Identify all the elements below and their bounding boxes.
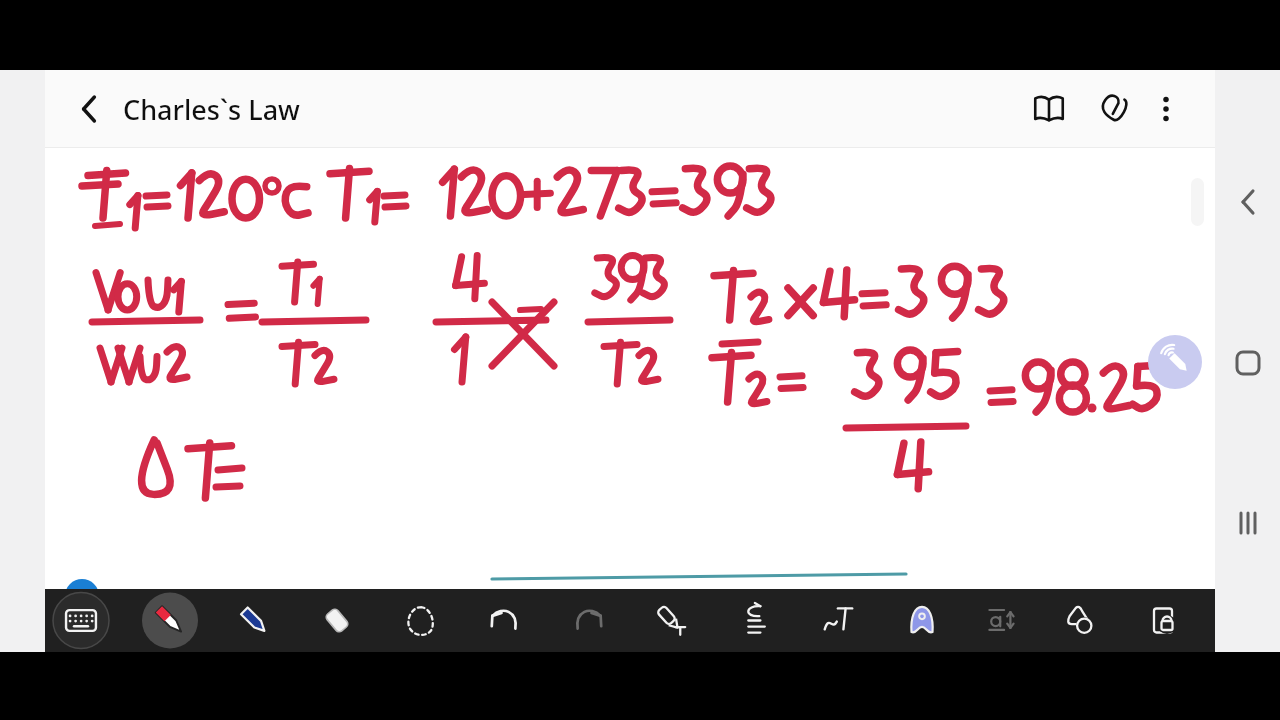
- button[interactable]: Back: [61, 81, 117, 137]
- button[interactable]: Text spacing: [974, 589, 1030, 652]
- button[interactable]: Pen: [142, 589, 198, 652]
- button[interactable]: Undo: [477, 589, 533, 652]
- button[interactable]: More options: [1138, 81, 1194, 137]
- button[interactable]: Pen to text: [644, 589, 700, 652]
- button[interactable]: Convert handwriting: [811, 589, 867, 652]
- staticText: Charles`s Law: [123, 91, 300, 128]
- button[interactable]: Lock: [1135, 589, 1191, 652]
- button[interactable]: Eraser: [309, 589, 365, 652]
- button[interactable]: Recents: [1220, 495, 1276, 551]
- button[interactable]: Straighten: [728, 589, 784, 652]
- button[interactable]: Air command: [1148, 335, 1202, 389]
- button[interactable]: Text style: [894, 589, 950, 652]
- button[interactable]: Redo: [560, 589, 616, 652]
- button[interactable]: Reading mode: [1021, 81, 1077, 137]
- button[interactable]: Highlighter: [226, 589, 282, 652]
- button[interactable]: Home: [1220, 335, 1276, 391]
- button[interactable]: Shapes: [1051, 589, 1107, 652]
- button[interactable]: Select: [393, 589, 449, 652]
- button[interactable]: Attach: [1086, 81, 1142, 137]
- button[interactable]: Keyboard: [53, 589, 109, 652]
- button[interactable]: Back: [1220, 174, 1276, 230]
